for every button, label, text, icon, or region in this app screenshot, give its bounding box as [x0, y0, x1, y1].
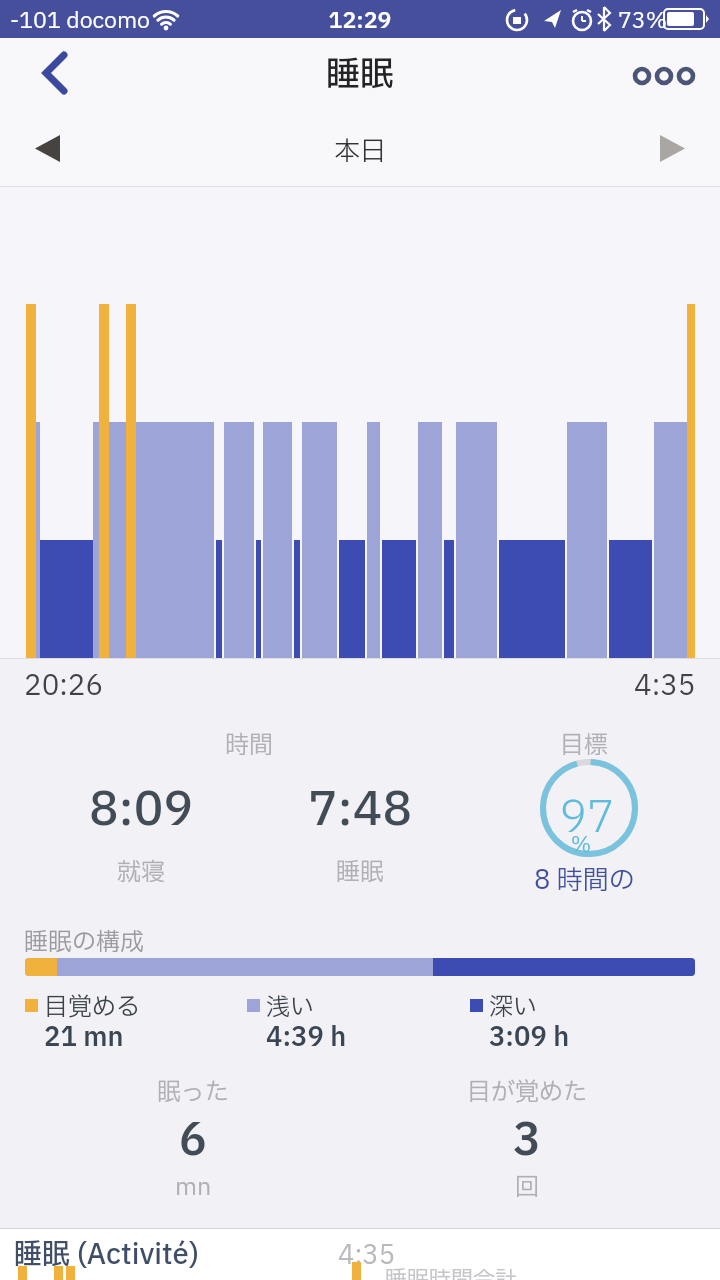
staticText: 目覚める: [44, 990, 140, 1026]
button[interactable]: 睡眠 (Activité): [0, 1228, 720, 1280]
staticText: 21 mn: [44, 1018, 124, 1057]
staticText: 20:26: [24, 665, 104, 707]
staticText: 時間: [225, 728, 273, 764]
staticText: 睡眠 (Activité): [14, 1234, 199, 1276]
staticText: 眠った: [157, 1075, 229, 1111]
staticText: 睡眠: [0, 50, 720, 101]
staticText: 睡眠: [336, 855, 384, 891]
staticText: 目が覚めた: [467, 1075, 587, 1111]
staticText: -101 docomo: [10, 5, 150, 38]
button[interactable]: [626, 56, 710, 96]
staticText: 4:35: [338, 1236, 396, 1275]
staticText: 3:09 h: [489, 1018, 570, 1057]
staticText: 睡眠の構成: [24, 925, 144, 961]
staticText: 回: [515, 1170, 539, 1206]
staticText: 97: [537, 785, 639, 851]
button[interactable]: [645, 123, 700, 173]
staticText: 目標: [560, 728, 608, 764]
staticText: 6: [179, 1108, 207, 1174]
staticText: 睡眠時間合計: [385, 1264, 518, 1280]
staticText: 73%: [618, 5, 668, 38]
staticText: 浅い: [266, 990, 314, 1026]
staticText: 深い: [489, 990, 537, 1026]
staticText: 8:09: [89, 775, 194, 845]
staticText: 本日: [0, 132, 720, 171]
staticText: mn: [175, 1170, 212, 1206]
staticText: 就寝: [117, 855, 165, 891]
button[interactable]: 97: [537, 756, 641, 860]
staticText: 7:48: [308, 775, 413, 845]
staticText: 3: [513, 1108, 541, 1174]
staticText: 4:35: [634, 665, 696, 707]
staticText: 8 時間の: [534, 861, 635, 900]
button[interactable]: [20, 123, 75, 173]
staticText: 4:39 h: [266, 1018, 347, 1057]
staticText: %: [537, 830, 633, 860]
button[interactable]: [30, 48, 80, 98]
staticText: 12:29: [0, 5, 720, 38]
